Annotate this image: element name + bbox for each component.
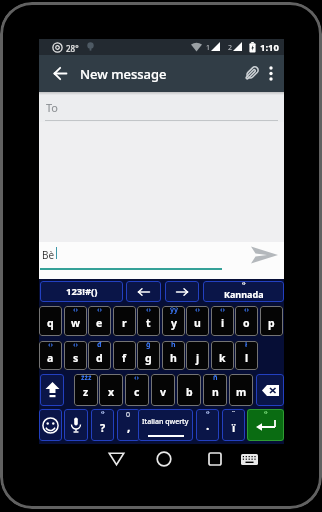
staticText: n <box>212 385 219 399</box>
button[interactable] <box>241 454 258 466</box>
button[interactable]: ‹› <box>186 306 209 336</box>
button[interactable]: ‹› <box>91 409 114 441</box>
staticText: e <box>96 316 103 330</box>
button[interactable]: 123!#() <box>40 281 123 302</box>
staticText: đ <box>97 341 102 350</box>
button[interactable]: ‹› <box>64 341 87 370</box>
staticText: ĥ <box>171 341 176 350</box>
staticText: u <box>194 316 201 330</box>
staticText: h <box>170 351 177 365</box>
staticText: i <box>221 316 225 330</box>
staticText: ‹› <box>244 306 250 315</box>
button[interactable]: r <box>113 306 136 336</box>
staticText: ‹› <box>101 409 105 416</box>
staticText: k <box>219 351 226 365</box>
staticText: o <box>243 316 250 330</box>
button[interactable] <box>39 409 62 441</box>
staticText: 2 <box>228 43 233 53</box>
staticText: ‹› <box>264 409 268 416</box>
staticText: 1 <box>206 43 211 53</box>
staticText: ‹› <box>134 374 140 383</box>
button[interactable]: f <box>113 341 136 370</box>
button[interactable] <box>165 281 199 302</box>
button[interactable]: ‹› <box>64 306 87 336</box>
button[interactable]: 0 <box>117 409 140 441</box>
button[interactable] <box>108 452 125 466</box>
staticText: ‹› <box>220 306 226 315</box>
button[interactable] <box>64 409 88 441</box>
staticText: r <box>122 316 127 330</box>
staticText: a <box>47 351 54 365</box>
button[interactable]: j <box>186 341 209 370</box>
button[interactable]: ‹› <box>196 409 219 441</box>
staticText: t <box>146 316 151 330</box>
button[interactable] <box>156 451 172 467</box>
button[interactable] <box>250 246 279 264</box>
staticText: ñ <box>213 374 218 383</box>
button[interactable]: ñ <box>203 374 227 406</box>
button[interactable]: ‹› <box>203 281 284 302</box>
staticText: ‹› <box>97 306 103 315</box>
staticText: ‹› <box>73 306 79 315</box>
staticText: g <box>145 351 152 365</box>
staticText: f <box>122 351 127 365</box>
button[interactable]: q <box>39 306 62 336</box>
button[interactable]: v <box>151 374 175 406</box>
staticText: ÿý <box>170 306 178 315</box>
button[interactable] <box>256 374 284 406</box>
staticText: žżź <box>81 374 92 383</box>
staticText: q <box>47 316 54 330</box>
staticText: ‹› <box>206 409 210 416</box>
staticText: j <box>196 351 200 365</box>
staticText: s <box>73 351 79 365</box>
button[interactable]: Italian qwerty <box>138 409 193 441</box>
button[interactable]: ‹› <box>211 306 234 336</box>
button[interactable]: žżź <box>74 374 98 406</box>
button[interactable]: x <box>99 374 123 406</box>
button[interactable]: ‹› <box>247 409 284 441</box>
staticText: p <box>268 316 275 330</box>
button[interactable] <box>266 66 276 82</box>
staticText: b <box>186 385 193 399</box>
button[interactable]: ĝ <box>137 341 160 370</box>
button[interactable] <box>242 64 261 83</box>
staticText: ł <box>245 341 248 350</box>
staticText: New message <box>80 65 167 83</box>
staticText: c <box>134 385 140 399</box>
button[interactable] <box>54 67 67 80</box>
button[interactable]: ‹› <box>39 341 62 370</box>
staticText: ‹› <box>242 281 246 287</box>
button[interactable]: ‹› <box>235 306 258 336</box>
staticText: Bè <box>42 248 55 262</box>
button[interactable] <box>208 452 222 466</box>
button[interactable]: ł <box>235 341 258 370</box>
staticText: v <box>160 385 166 399</box>
button[interactable]: To <box>39 92 284 122</box>
button[interactable]: đ <box>88 341 111 370</box>
staticText: d <box>96 351 103 365</box>
staticText: ĝ <box>146 341 151 350</box>
button[interactable]: ‹› <box>88 306 111 336</box>
staticText: 28° <box>66 43 79 54</box>
button[interactable]: ĥ <box>162 341 185 370</box>
button[interactable] <box>40 374 64 406</box>
button[interactable]: ˙˙ <box>222 409 245 441</box>
staticText: ‹› <box>48 341 54 350</box>
staticText: x <box>108 385 115 399</box>
button[interactable]: ‹› <box>137 306 160 336</box>
staticText: ? <box>100 420 106 435</box>
button[interactable]: ‹› <box>125 374 149 406</box>
staticText: ‹› <box>73 341 79 350</box>
button[interactable]: p <box>260 306 283 336</box>
staticText: 123!#() <box>66 285 98 298</box>
button[interactable]: ÿý <box>162 306 185 336</box>
button[interactable]: b <box>177 374 201 406</box>
button[interactable]: m <box>229 374 253 406</box>
staticText: Kannada <box>224 288 264 300</box>
button[interactable]: k <box>211 341 234 370</box>
staticText: 0 <box>126 410 131 420</box>
staticText: z <box>83 385 89 399</box>
staticText: To <box>46 100 59 115</box>
button[interactable] <box>126 281 161 302</box>
staticText: y <box>171 316 177 330</box>
